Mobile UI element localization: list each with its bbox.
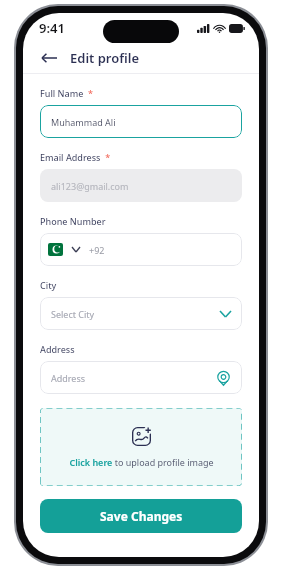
staticText: Save Changes <box>100 508 183 524</box>
button[interactable]: ali123@gmail.com <box>40 169 242 202</box>
staticText: Edit profile <box>70 49 140 67</box>
staticText: Muhammad Ali <box>51 116 116 128</box>
button[interactable]: Click here to upload profile image <box>40 408 242 486</box>
staticText: +92 <box>89 244 105 256</box>
staticText: Phone Number <box>40 215 106 227</box>
staticText: Click here to upload profile image <box>69 456 214 468</box>
staticText: City <box>40 279 57 291</box>
staticText: ali123@gmail.com <box>51 180 129 192</box>
button[interactable]: Address <box>40 361 242 394</box>
staticText: Select City <box>51 308 95 320</box>
button[interactable]: Select City <box>40 297 242 330</box>
staticText: Email Address * <box>40 151 111 163</box>
staticText: Full Name * <box>40 87 94 99</box>
staticText: Address <box>40 343 75 355</box>
button[interactable]: Save Changes <box>40 499 242 533</box>
button[interactable]: Muhammad Ali <box>40 105 242 138</box>
staticText: 9:41 <box>39 19 65 37</box>
button[interactable]: Back <box>37 46 61 70</box>
other: Pick location <box>215 370 231 386</box>
staticText: Address <box>51 372 86 384</box>
button[interactable]: +92 <box>40 233 242 266</box>
